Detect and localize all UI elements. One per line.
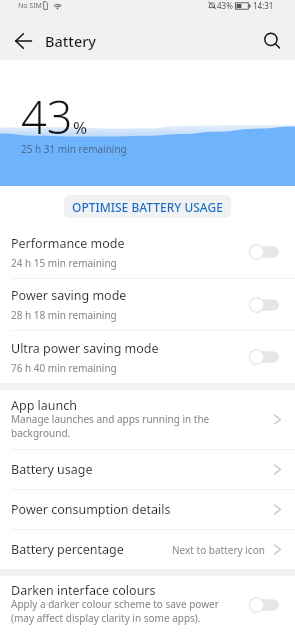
button[interactable]: Search: [253, 22, 291, 60]
staticText: Performance mode: [11, 235, 125, 252]
button[interactable]: Battery percentage: [0, 530, 295, 569]
staticText: 14:31: [253, 0, 274, 11]
button[interactable]: Back: [5, 22, 41, 60]
staticText: 43%: [217, 0, 233, 11]
staticText: 28 h 18 min remaining: [11, 308, 117, 322]
button[interactable]: Ultra power saving mode: [0, 331, 295, 383]
staticText: Apply a darker colour scheme to save pow…: [11, 597, 219, 625]
staticText: Manage launches and apps running in the …: [11, 412, 229, 440]
staticText: OPTIMISE BATTERY USAGE: [72, 199, 223, 215]
button[interactable]: Performance mode: [0, 226, 295, 278]
staticText: Power consumption details: [11, 501, 171, 518]
button[interactable]: Power consumption details: [0, 490, 295, 529]
button[interactable]: Battery usage: [0, 450, 295, 489]
staticText: Battery percentage: [11, 541, 124, 558]
button[interactable]: App launch: [0, 390, 295, 449]
staticText: 76 h 40 min remaining: [11, 361, 117, 375]
button[interactable]: OPTIMISE BATTERY USAGE: [64, 195, 231, 218]
staticText: Battery: [45, 31, 96, 51]
staticText: No SIM: [18, 1, 42, 11]
staticText: %: [73, 116, 88, 139]
staticText: Ultra power saving mode: [11, 340, 159, 357]
staticText: Battery usage: [11, 461, 93, 478]
staticText: Next to battery icon: [172, 543, 265, 557]
staticText: Darken interface colours: [11, 582, 156, 599]
staticText: App launch: [11, 397, 78, 414]
staticText: Power saving mode: [11, 287, 127, 304]
button[interactable]: Darken interface colours: [0, 576, 295, 637]
staticText: 25 h 31 min remaining: [21, 142, 127, 156]
button[interactable]: Power saving mode: [0, 279, 295, 330]
staticText: 43: [21, 86, 73, 147]
staticText: 24 h 15 min remaining: [11, 256, 117, 270]
